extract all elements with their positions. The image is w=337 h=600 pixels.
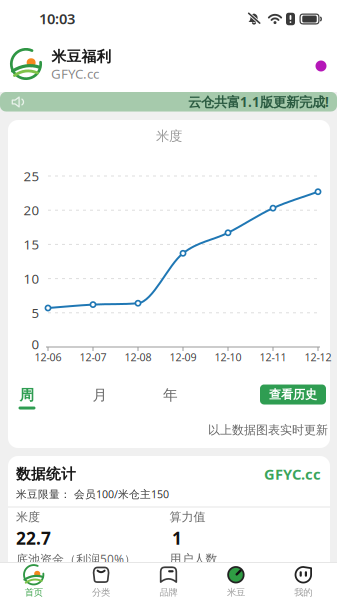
staticText: 米度: [16, 510, 40, 524]
staticText: 算力值: [169, 510, 205, 524]
staticText: 1: [172, 526, 182, 549]
staticText: 底池资金（利润50%）: [16, 551, 136, 567]
staticText: 15: [23, 235, 39, 253]
button[interactable]: 月: [85, 382, 115, 408]
staticText: 米豆限量： 会员100/米仓主150: [16, 487, 169, 501]
staticText: 12-11: [259, 350, 286, 364]
staticText: 5: [31, 304, 39, 322]
staticText: 首页: [25, 587, 43, 598]
button[interactable]: 云仓共富1.1版更新完成!: [0, 92, 337, 111]
button[interactable]: 我的: [270, 563, 336, 600]
staticText: 我的: [294, 587, 312, 598]
staticText: 25: [23, 167, 39, 185]
staticText: 20: [23, 201, 39, 219]
staticText: 0: [31, 335, 39, 353]
staticText: 12-07: [79, 350, 106, 364]
staticText: 米度: [156, 128, 182, 144]
staticText: 用户人数: [169, 552, 217, 566]
staticText: 品牌: [159, 587, 177, 598]
button[interactable]: 米豆: [203, 563, 269, 600]
button[interactable]: 周: [10, 384, 44, 414]
staticText: 22.7: [16, 526, 51, 549]
button[interactable]: 查看历史: [260, 384, 326, 404]
button[interactable]: 首页: [1, 563, 67, 600]
staticText: 月: [92, 386, 107, 404]
staticText: 周: [19, 386, 34, 404]
button[interactable]: 品牌: [135, 563, 201, 600]
staticText: 云仓共富1.1版更新完成!: [188, 93, 329, 111]
staticText: 查看历史: [269, 387, 317, 402]
staticText: 分类: [92, 587, 110, 598]
staticText: 12-08: [124, 350, 151, 364]
staticText: 12-12: [304, 350, 331, 364]
staticText: GFYC.cc: [51, 65, 99, 82]
staticText: 以上数据图表实时更新: [208, 423, 328, 437]
staticText: 10: [23, 270, 39, 287]
staticText: 年: [163, 386, 178, 404]
button[interactable]: 分类: [68, 563, 134, 600]
button[interactable]: 年: [155, 382, 185, 408]
staticText: 米豆: [227, 587, 245, 598]
staticText: 12-10: [214, 350, 241, 364]
staticText: 12-09: [169, 350, 196, 364]
staticText: GFYC.cc: [264, 464, 321, 484]
staticText: 数据统计: [16, 465, 76, 483]
staticText: 10:03: [39, 9, 75, 28]
staticText: 12-06: [34, 350, 61, 364]
staticText: 米豆福利: [51, 47, 111, 65]
